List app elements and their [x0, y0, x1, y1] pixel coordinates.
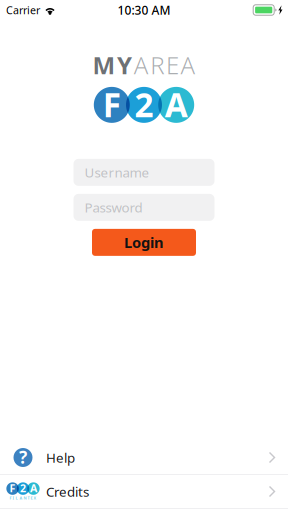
- staticText: Username: [84, 163, 149, 181]
- staticText: Y: [117, 49, 132, 81]
- staticText: M: [92, 49, 115, 81]
- button[interactable]: ?: [0, 441, 288, 474]
- staticText: Password: [84, 198, 142, 216]
- staticText: F: [103, 82, 121, 126]
- staticText: Login: [124, 233, 164, 252]
- staticText: A: [165, 82, 188, 126]
- staticText: E: [166, 49, 179, 81]
- staticText: 2: [134, 82, 153, 126]
- button[interactable]: Login: [92, 229, 196, 256]
- staticText: ?: [19, 445, 27, 468]
- staticText: A: [180, 49, 195, 81]
- staticText: R: [150, 49, 164, 81]
- staticText: Help: [46, 449, 75, 466]
- button[interactable]: F: [0, 475, 288, 508]
- staticText: F: [10, 481, 16, 495]
- staticText: 2: [20, 481, 26, 495]
- staticText: A: [134, 49, 149, 81]
- staticText: A: [30, 481, 37, 495]
- staticText: F I L A N T E X: [9, 495, 36, 501]
- staticText: 10:30 AM: [117, 2, 170, 18]
- staticText: Credits: [46, 483, 89, 500]
- staticText: Carrier: [6, 3, 40, 17]
